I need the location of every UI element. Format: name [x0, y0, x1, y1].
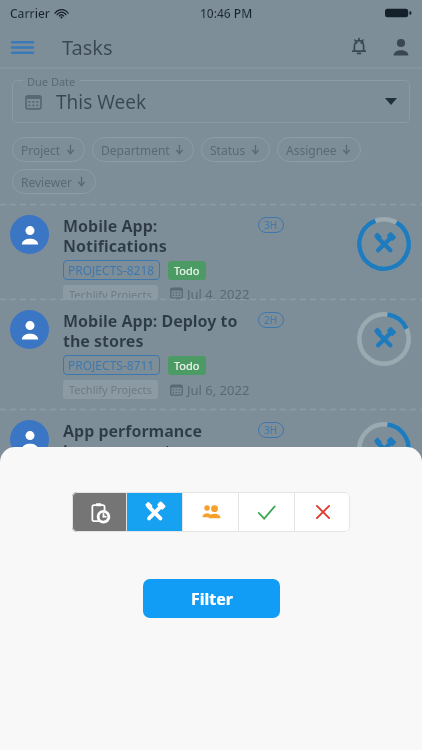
staticText: Jul 4, 2022	[187, 285, 250, 300]
staticText: 3H	[264, 423, 278, 437]
button[interactable]: Completed tasks	[239, 492, 294, 532]
staticText: Status	[210, 142, 246, 158]
button[interactable]: Assigned tasks	[183, 492, 238, 532]
staticText: PROJECTS-8711	[68, 357, 155, 373]
staticText: Mobile App: Notifications	[63, 215, 249, 256]
staticText: Jul 9, 2022	[187, 510, 250, 520]
staticText: Assignee	[286, 142, 337, 158]
button[interactable]: Profile	[380, 26, 422, 68]
button[interactable]: Assignee	[277, 137, 361, 162]
button[interactable]: Open navigation menu	[0, 26, 44, 68]
button[interactable]: Status	[201, 137, 270, 162]
staticText: 10:46 PM	[200, 5, 253, 21]
button[interactable]: Mobile App: Deploy to the stores	[0, 300, 422, 410]
button[interactable]: Rejected tasks	[295, 492, 350, 532]
staticText: PROJECTS-8218	[68, 262, 155, 278]
button[interactable]: App performance improvement upon languag	[0, 410, 422, 520]
button[interactable]: In progress tasks	[127, 492, 182, 532]
button[interactable]: Project	[12, 137, 85, 162]
staticText: Todo	[174, 488, 200, 503]
staticText: Todo	[174, 358, 200, 373]
staticText: Techlify Projects	[69, 287, 152, 298]
button[interactable]: Filter	[143, 579, 280, 618]
staticText: Department	[101, 142, 170, 158]
staticText: PROJECTS-8900	[68, 487, 155, 503]
staticText: Reviewer	[21, 174, 72, 190]
staticText: Mobile App: Deploy to the stores	[63, 310, 249, 351]
button[interactable]: Notifications	[338, 26, 380, 68]
staticText: Jul 6, 2022	[187, 381, 250, 399]
staticText: 3H	[264, 218, 278, 232]
staticText: Techlify Projects	[69, 382, 152, 397]
staticText: Due Date	[27, 74, 76, 89]
staticText: Todo	[174, 263, 200, 278]
staticText: Techlify Projects	[69, 512, 152, 518]
button[interactable]: Pending tasks	[72, 492, 126, 532]
staticText: This Week	[56, 89, 147, 115]
staticText: Carrier	[10, 5, 50, 21]
staticText: App performance improvement upon languag	[63, 420, 249, 481]
button[interactable]: Reviewer	[12, 169, 96, 194]
staticText: 2H	[264, 313, 278, 327]
button[interactable]: Department	[92, 137, 194, 162]
staticText: Filter	[191, 588, 233, 610]
staticText: Tasks	[62, 34, 113, 61]
button[interactable]: Mobile App: Notifications	[0, 205, 422, 300]
button[interactable]: This Week	[12, 80, 410, 123]
staticText: Project	[21, 142, 61, 158]
